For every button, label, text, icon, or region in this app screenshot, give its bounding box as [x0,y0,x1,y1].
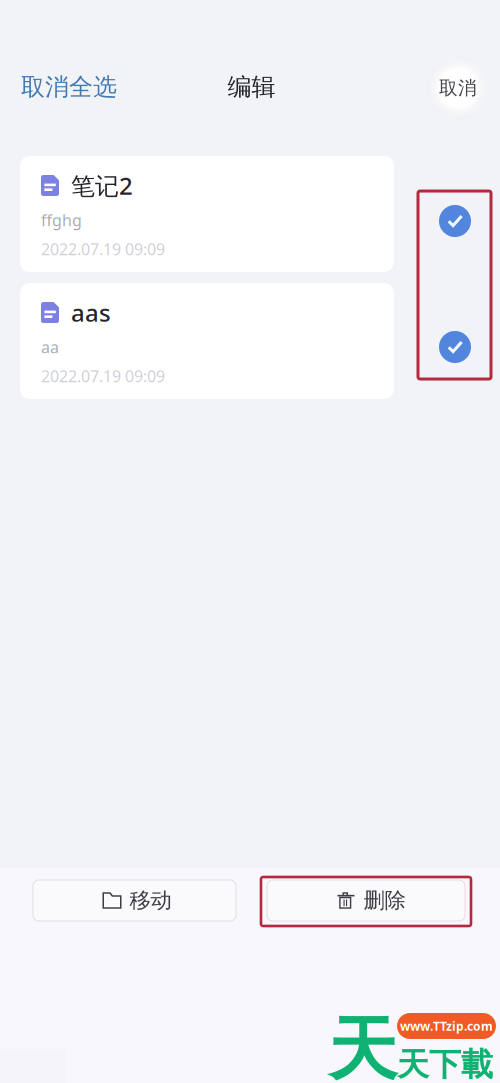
button[interactable]: Selected [439,205,471,237]
staticText: ffghg [41,209,82,231]
staticText: 取消全选 [21,72,117,102]
staticText: 删除 [363,887,405,914]
staticText: 取消 [439,76,477,99]
button[interactable]: 移动 [33,880,236,921]
staticText: 编辑 [227,72,275,102]
button[interactable]: 笔记2 [20,156,394,272]
button[interactable]: aas [20,283,394,399]
staticText: 移动 [129,887,171,914]
staticText: aa [41,336,59,358]
staticText: 天下載 [397,1045,493,1083]
staticText: 2022.07.19 09:09 [41,365,165,387]
staticText: 笔记2 [71,170,133,201]
staticText: www.TTzip.com [400,1018,493,1034]
button[interactable]: Selected [439,331,471,363]
staticText: aas [71,297,111,328]
staticText: 天 [328,1007,397,1083]
staticText: 2022.07.19 09:09 [41,238,165,260]
button[interactable]: 删除 [267,880,465,921]
button[interactable]: 取消 [426,56,490,120]
button[interactable]: 取消全选 [0,62,125,112]
